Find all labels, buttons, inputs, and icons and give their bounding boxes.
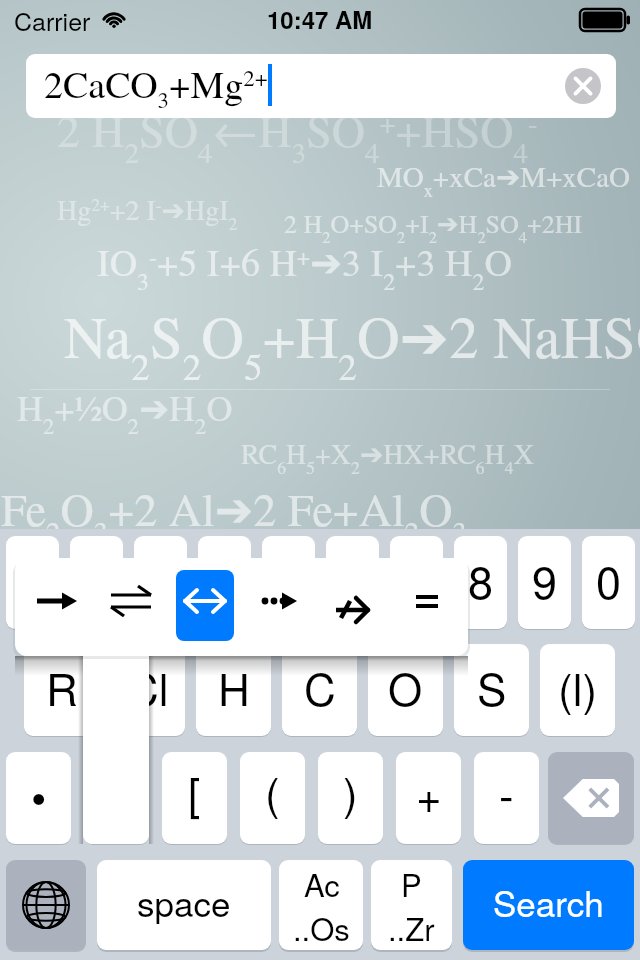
- staticText: Ac: [304, 861, 340, 905]
- staticText: space: [137, 877, 231, 927]
- staticText: 0: [596, 547, 622, 611]
- button[interactable]: Switch keyboard: [6, 860, 86, 950]
- button[interactable]: Clear text: [565, 68, 601, 104]
- staticText: 6: [340, 547, 366, 611]
- staticText: 8: [468, 547, 494, 611]
- button[interactable]: Reversible arrow: [168, 570, 242, 641]
- staticText: ..Zr: [388, 905, 435, 949]
- button[interactable]: R: [24, 644, 99, 736]
- staticText: Carrier: [14, 2, 91, 38]
- staticText: C: [304, 655, 336, 718]
- staticText: (: [265, 759, 280, 822]
- button[interactable]: Ac: [279, 860, 363, 950]
- staticText: MOx+xCa➔M+xCaO: [377, 156, 631, 202]
- staticText: +: [416, 762, 442, 825]
- button[interactable]: -: [474, 752, 539, 844]
- staticText: (l): [558, 655, 598, 718]
- staticText: 2CaCO3+Mg2+: [44, 58, 268, 114]
- staticText: 7: [404, 547, 430, 611]
- button[interactable]: 2CaCO3+Mg2+: [26, 54, 616, 118]
- staticText: 1: [20, 547, 46, 611]
- button[interactable]: +: [396, 752, 461, 844]
- staticText: 5: [276, 547, 302, 611]
- button[interactable]: Dotted arrow: [242, 570, 316, 641]
- button[interactable]: H: [196, 644, 271, 736]
- button[interactable]: Search: [463, 860, 634, 950]
- staticText: H2+½O2➔H2O: [17, 383, 233, 441]
- button[interactable]: Yields arrow: [20, 570, 94, 641]
- button[interactable]: O: [368, 644, 443, 736]
- staticText: Cl: [127, 655, 169, 718]
- staticText: H: [218, 655, 250, 718]
- button[interactable]: Equilibrium arrow: [94, 570, 168, 641]
- button[interactable]: 2: [70, 536, 123, 629]
- staticText: 10:47 AM: [267, 2, 373, 36]
- button[interactable]: 7: [390, 536, 443, 629]
- button[interactable]: S: [454, 644, 529, 736]
- staticText: Search: [493, 877, 604, 927]
- button[interactable]: 0: [582, 536, 635, 629]
- staticText: 2 H2O+SO2+I2➔H2SO4+2HI: [284, 206, 583, 248]
- button[interactable]: (: [240, 752, 305, 844]
- button[interactable]: C: [282, 644, 357, 736]
- staticText: Na2S2O5+H2O➔2 NaHSO3: [64, 296, 640, 390]
- staticText: S: [477, 655, 507, 718]
- button[interactable]: 1: [6, 536, 59, 629]
- button[interactable]: Reversible arrow: [176, 570, 234, 641]
- staticText: 3: [148, 547, 174, 611]
- button[interactable]: Backspace: [548, 752, 634, 844]
- staticText: RC6H5+X2➔HX+RC6H4X: [241, 434, 534, 479]
- button[interactable]: 8: [454, 536, 507, 629]
- button[interactable]: 6: [326, 536, 379, 629]
- button[interactable]: P: [371, 860, 452, 950]
- staticText: 2 H2SO4←H3SO4++HSO4-: [57, 98, 538, 171]
- button[interactable]: 9: [518, 536, 571, 629]
- button[interactable]: Equals sign: [390, 570, 464, 641]
- button[interactable]: (l): [540, 644, 615, 736]
- staticText: ): [343, 759, 358, 822]
- button[interactable]: 4: [198, 536, 251, 629]
- button[interactable]: ): [318, 752, 383, 844]
- button[interactable]: space: [97, 860, 271, 950]
- staticText: P: [401, 861, 422, 905]
- staticText: Fe2O3+2 Al➔2 Fe+Al2O3: [1, 477, 467, 550]
- button[interactable]: 5: [262, 536, 315, 629]
- staticText: •: [31, 764, 47, 827]
- button[interactable]: ,: [84, 752, 149, 844]
- staticText: IO3-+5 I+6 H+➔3 I2+3 H2O: [97, 236, 512, 297]
- staticText: 4: [212, 547, 238, 611]
- button[interactable]: Does not yield arrow: [316, 570, 390, 641]
- staticText: R: [46, 655, 78, 718]
- staticText: Hg2++2 I-➔HgI2: [57, 190, 238, 235]
- staticText: O: [388, 655, 423, 718]
- staticText: [: [188, 759, 201, 822]
- staticText: ..Os: [293, 905, 350, 949]
- button[interactable]: Cl: [110, 644, 185, 736]
- staticText: -: [499, 761, 514, 824]
- button[interactable]: •: [6, 752, 71, 844]
- button[interactable]: 3: [134, 536, 187, 629]
- button[interactable]: [: [162, 752, 227, 844]
- staticText: 9: [532, 547, 558, 611]
